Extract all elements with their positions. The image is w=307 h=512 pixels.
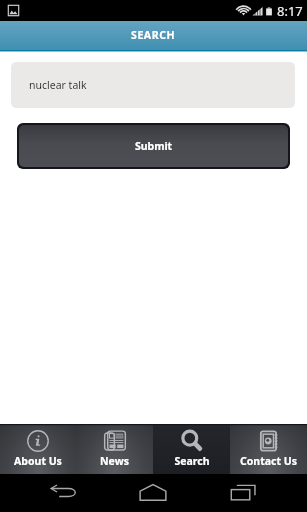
staticText: Contact Us xyxy=(240,454,297,468)
button[interactable]: About Us xyxy=(0,424,76,474)
button[interactable]: Back xyxy=(29,474,97,512)
staticText: nuclear talk xyxy=(29,78,87,92)
staticText: SEARCH xyxy=(131,28,176,42)
staticText: About Us xyxy=(14,454,62,468)
button[interactable]: Recent apps xyxy=(209,474,277,512)
staticText: News xyxy=(100,454,129,468)
staticText: 8:17 xyxy=(277,2,303,20)
button[interactable]: News xyxy=(76,424,153,474)
staticText: Submit xyxy=(135,139,173,153)
button[interactable]: Search xyxy=(153,424,230,474)
staticText: Search xyxy=(174,454,210,468)
button[interactable]: Home xyxy=(119,474,187,512)
button[interactable]: Submit xyxy=(19,125,288,167)
button[interactable]: Contact Us xyxy=(230,424,307,474)
button[interactable]: nuclear talk xyxy=(11,62,295,108)
